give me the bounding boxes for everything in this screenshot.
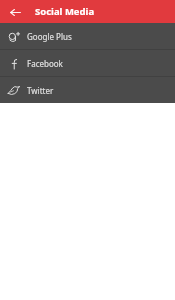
staticText: Facebook [27, 58, 63, 69]
staticText: Twitter [27, 85, 54, 96]
button[interactable]: Google Plus [0, 23, 175, 49]
staticText: Google Plus [27, 31, 72, 42]
button[interactable]: Twitter [0, 77, 175, 103]
button[interactable]: Back [7, 4, 23, 20]
button[interactable]: Facebook [0, 50, 175, 76]
staticText: Social Media [35, 5, 95, 18]
